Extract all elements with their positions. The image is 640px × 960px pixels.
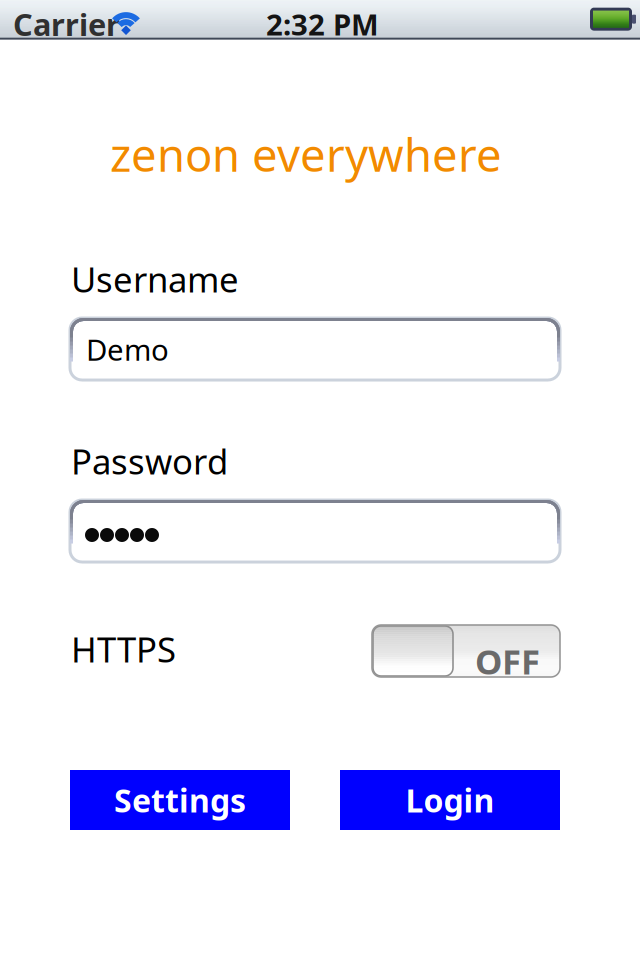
button[interactable]: Username, Demo (70, 318, 560, 380)
button[interactable]: Password (70, 500, 560, 562)
staticText: Settings (114, 779, 246, 821)
staticText: OFF (475, 638, 540, 684)
staticText: 2:32 PM (266, 5, 379, 44)
button[interactable]: Settings (70, 770, 290, 830)
button[interactable]: HTTPS (372, 625, 560, 677)
staticText: Carrier (13, 4, 120, 44)
staticText: Username (71, 256, 239, 302)
staticText: HTTPS (71, 626, 176, 672)
staticText: Demo (86, 330, 169, 369)
staticText: Login (405, 779, 494, 821)
staticText: Password (71, 438, 228, 484)
staticText: zenon everywhere (110, 124, 502, 184)
button[interactable]: Login (340, 770, 560, 830)
